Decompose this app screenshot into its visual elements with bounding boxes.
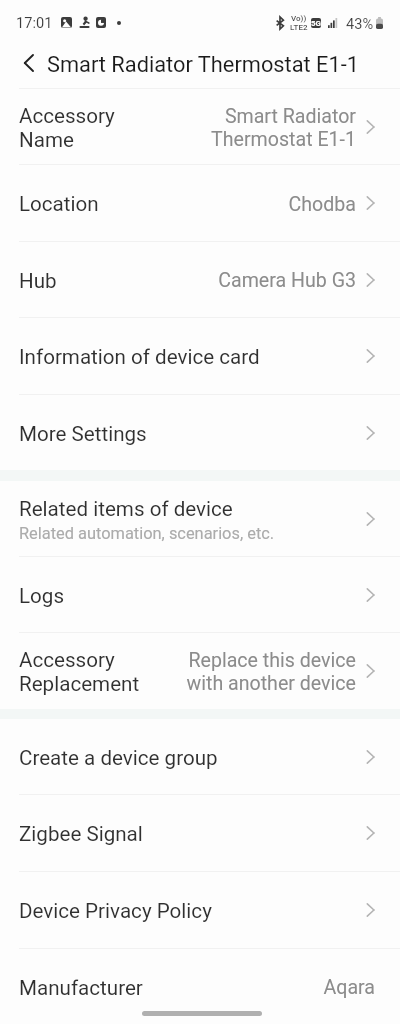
- staticText: Related items of device: [19, 497, 233, 521]
- button[interactable]: Accessory Replacement: [0, 633, 400, 709]
- staticText: Chodba: [288, 193, 356, 216]
- button[interactable]: Location: [0, 165, 400, 241]
- staticText: Location: [19, 192, 99, 216]
- staticText: Camera Hub G3: [218, 269, 356, 292]
- staticText: Accessory Name: [19, 104, 115, 152]
- staticText: Information of device card: [19, 345, 260, 369]
- staticText: Zigbee Signal: [19, 822, 143, 846]
- button[interactable]: Create a device group: [0, 719, 400, 794]
- button[interactable]: Hub: [0, 242, 400, 317]
- staticText: Logs: [19, 584, 65, 608]
- staticText: Replace this device with another device: [186, 649, 356, 695]
- staticText: Accessory Replacement: [19, 648, 140, 696]
- button[interactable]: Logs: [0, 557, 400, 632]
- button[interactable]: More Settings: [0, 395, 400, 470]
- staticText: 5G: [311, 19, 321, 28]
- staticText: Create a device group: [19, 746, 218, 770]
- button[interactable]: Manufacturer: [0, 949, 400, 1024]
- button[interactable]: Information of device card: [0, 318, 400, 394]
- staticText: Aqara: [323, 976, 375, 999]
- button[interactable]: Accessory Name: [0, 89, 400, 164]
- button[interactable]: Device Privacy Policy: [0, 872, 400, 948]
- staticText: Smart Radiator Thermostat E1-1: [47, 52, 360, 78]
- staticText: Manufacturer: [19, 976, 143, 1000]
- staticText: 43%: [346, 15, 374, 32]
- staticText: Device Privacy Policy: [19, 899, 212, 923]
- staticText: Vo)): [291, 14, 307, 23]
- button[interactable]: Zigbee Signal: [0, 795, 400, 871]
- staticText: 17:01: [16, 14, 53, 31]
- button[interactable]: Related items of device: [0, 481, 400, 556]
- button[interactable]: Back: [23, 50, 37, 76]
- staticText: Hub: [19, 269, 57, 293]
- staticText: LTE2: [290, 23, 308, 32]
- staticText: More Settings: [19, 422, 147, 446]
- staticText: Smart Radiator Thermostat E1-1: [211, 105, 356, 151]
- staticText: Related automation, scenarios, etc.: [19, 524, 275, 543]
